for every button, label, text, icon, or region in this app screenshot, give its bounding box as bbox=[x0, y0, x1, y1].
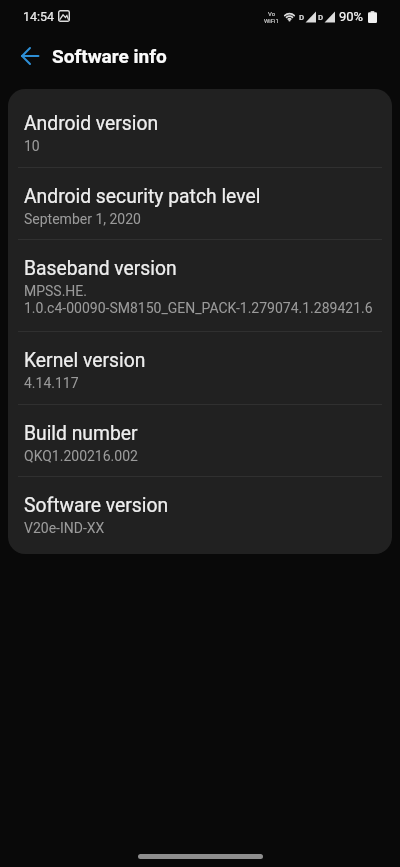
button[interactable]: Android security patch level bbox=[8, 168, 392, 240]
staticText: D bbox=[318, 13, 324, 22]
staticText: V20e-IND-XX bbox=[24, 520, 105, 536]
button[interactable]: Software version bbox=[8, 477, 392, 554]
staticText: 10 bbox=[24, 138, 40, 154]
button[interactable]: Baseband version bbox=[8, 240, 392, 332]
staticText: WiFi1 bbox=[264, 17, 279, 24]
staticText: Software version bbox=[24, 494, 169, 517]
staticText: September 1, 2020 bbox=[24, 211, 141, 227]
button[interactable]: Back bbox=[10, 36, 50, 76]
button[interactable]: Android version bbox=[8, 89, 392, 168]
staticText: Android security patch level bbox=[24, 185, 261, 208]
staticText: Baseband version bbox=[24, 257, 177, 280]
staticText: 14:54 bbox=[23, 9, 55, 24]
staticText: Kernel version bbox=[24, 349, 146, 372]
staticText: Build number bbox=[24, 422, 138, 445]
staticText: MPSS.HE. 1.0.c4-00090-SM8150_GEN_PACK-1.… bbox=[24, 283, 373, 317]
button[interactable]: Kernel version bbox=[8, 332, 392, 405]
staticText: 4.14.117 bbox=[24, 375, 79, 391]
staticText: D bbox=[299, 13, 305, 22]
staticText: Vo bbox=[268, 10, 276, 17]
staticText: QKQ1.200216.002 bbox=[24, 448, 138, 464]
staticText: 90% bbox=[339, 9, 364, 24]
staticText: Android version bbox=[24, 112, 159, 135]
staticText: Software info bbox=[52, 45, 167, 67]
button[interactable]: Build number bbox=[8, 405, 392, 477]
